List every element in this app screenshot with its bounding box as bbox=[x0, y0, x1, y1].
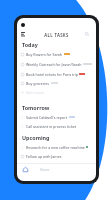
button[interactable]: Follow up with James bbox=[17, 151, 96, 161]
staticText: Follow up with James bbox=[26, 154, 62, 159]
staticText: Upcoming bbox=[22, 134, 50, 141]
button[interactable]: Home screen bbox=[40, 167, 54, 173]
button[interactable]: Buy flowers for Sarah bbox=[17, 49, 96, 59]
button[interactable]: Add a task bbox=[17, 87, 96, 97]
button[interactable]: Submit Caldwell's report bbox=[17, 112, 96, 122]
staticText: Buy flowers for Sarah bbox=[26, 52, 63, 57]
staticText: Research for a new coffee machine bbox=[26, 145, 85, 150]
staticText: Home screen bbox=[40, 167, 54, 173]
button[interactable]: Buy groceries bbox=[17, 78, 96, 88]
staticText: Tomorrow bbox=[22, 104, 50, 111]
staticText: Buy groceries bbox=[26, 81, 50, 86]
button[interactable]: Book hotel tickets for Paris trip bbox=[17, 69, 96, 79]
button[interactable]: Weekly Outreach for Jason/Sarah bbox=[17, 59, 96, 69]
staticText: Call assistant in process ticket bbox=[26, 124, 77, 129]
button[interactable]: Search bbox=[82, 29, 92, 39]
staticText: Submit Caldwell's report bbox=[26, 115, 68, 120]
staticText: Add a task bbox=[26, 90, 44, 95]
staticText: Book hotel tickets for Paris trip bbox=[26, 72, 78, 77]
staticText: Weekly Outreach for Jason/Sarah bbox=[26, 62, 82, 67]
button[interactable]: Menu bbox=[18, 29, 28, 39]
staticText: ALL TASKS bbox=[17, 32, 96, 38]
button[interactable]: Research for a new coffee machine bbox=[17, 142, 96, 152]
button[interactable]: Home bbox=[20, 164, 30, 174]
staticText: Today bbox=[22, 41, 38, 48]
button[interactable]: Call assistant in process ticket bbox=[17, 121, 96, 131]
